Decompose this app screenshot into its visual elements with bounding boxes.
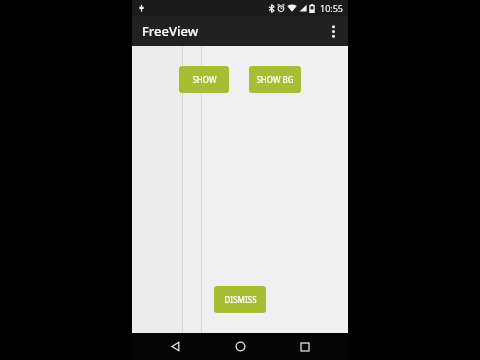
button[interactable]: Back bbox=[153, 333, 197, 360]
button[interactable]: Home bbox=[218, 333, 262, 360]
staticText: 10:55 bbox=[320, 2, 344, 14]
button[interactable]: DISMISS bbox=[214, 286, 266, 313]
staticText: SHOW bbox=[192, 74, 217, 85]
staticText: SHOW BG bbox=[256, 74, 294, 85]
button[interactable]: SHOW BG bbox=[249, 66, 301, 93]
button[interactable]: SHOW bbox=[179, 66, 229, 93]
staticText: DISMISS bbox=[224, 294, 257, 305]
button[interactable]: Recent apps bbox=[283, 333, 327, 360]
staticText: FreeView bbox=[142, 22, 199, 40]
button[interactable]: More options bbox=[318, 16, 348, 46]
